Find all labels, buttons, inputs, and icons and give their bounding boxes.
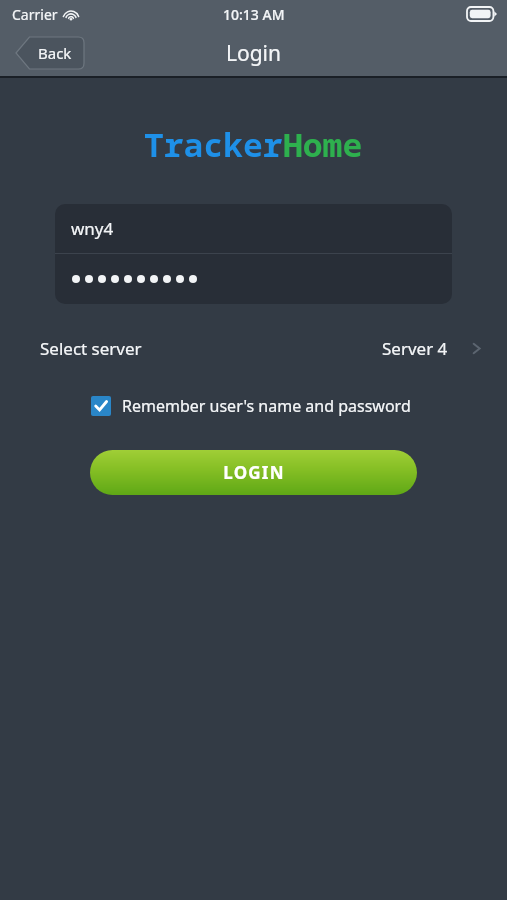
staticText: LOGIN <box>223 461 285 484</box>
staticText: Tracker <box>144 122 283 167</box>
staticText: Carrier <box>12 5 58 24</box>
staticText: Login <box>226 39 282 68</box>
button[interactable]: Back <box>16 37 84 69</box>
button[interactable]: wny4 <box>55 204 452 253</box>
staticText: Remember user's name and password <box>122 395 411 417</box>
staticText: wny4 <box>71 217 114 240</box>
button[interactable] <box>55 254 452 304</box>
staticText: Back <box>38 43 72 63</box>
staticText: Select server <box>40 337 142 360</box>
staticText: Server 4 <box>382 337 448 360</box>
button[interactable]: LOGIN <box>90 450 417 495</box>
staticText: Home <box>283 122 363 167</box>
staticText: 10:13 AM <box>223 5 285 24</box>
button[interactable]: Remember user's name and password <box>91 391 411 421</box>
button[interactable]: Select server <box>0 330 507 366</box>
